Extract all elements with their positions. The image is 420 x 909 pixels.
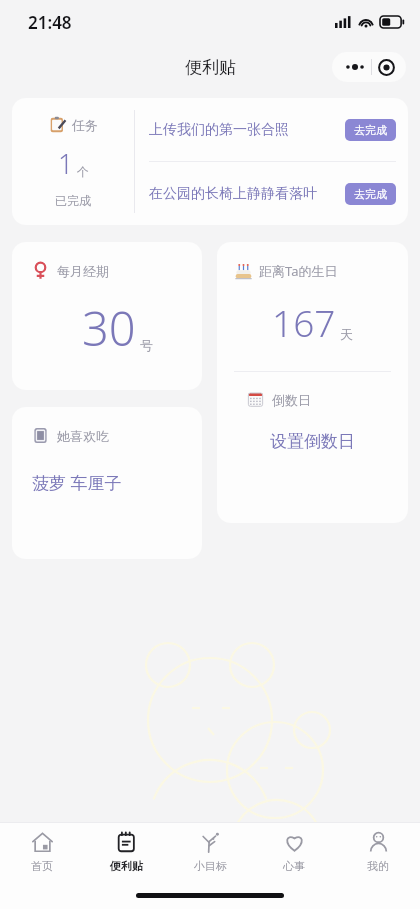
- button[interactable]: 上传我们的第一张合照: [149, 98, 396, 161]
- button[interactable]: 小目标: [168, 823, 252, 881]
- staticText: 她喜欢吃: [57, 428, 109, 444]
- staticText: 1: [58, 145, 74, 182]
- staticText: 个: [77, 164, 89, 179]
- staticText: 已完成: [55, 193, 91, 208]
- staticText: 去完成: [354, 123, 387, 137]
- staticText: 倒数日: [272, 392, 311, 408]
- button[interactable]: 去完成: [345, 119, 396, 141]
- button[interactable]: 倒数日: [217, 391, 408, 452]
- staticText: 菠萝 车厘子: [32, 471, 122, 494]
- staticText: 我的: [367, 859, 389, 873]
- staticText: 任务: [72, 117, 98, 133]
- button[interactable]: 距离Ta的生日: [217, 242, 408, 347]
- staticText: 号: [140, 337, 153, 353]
- staticText: 去完成: [354, 187, 387, 201]
- staticText: 设置倒数日: [270, 431, 355, 452]
- staticText: 小目标: [194, 859, 227, 873]
- button[interactable]: 每月经期: [12, 242, 202, 390]
- button[interactable]: More and home capsule: [332, 52, 406, 82]
- staticText: 每月经期: [57, 263, 109, 279]
- staticText: 30: [82, 296, 136, 360]
- button[interactable]: 任务: [12, 98, 134, 225]
- staticText: 便利贴: [110, 859, 143, 873]
- staticText: 在公园的长椅上静静看落叶: [149, 185, 345, 203]
- staticText: 167: [272, 297, 336, 347]
- button[interactable]: 去完成: [345, 183, 396, 205]
- button[interactable]: 便利贴: [84, 823, 168, 881]
- staticText: 天: [340, 326, 353, 342]
- staticText: 距离Ta的生日: [259, 262, 338, 280]
- staticText: 21:48: [28, 11, 72, 34]
- staticText: 心事: [283, 859, 305, 873]
- staticText: 上传我们的第一张合照: [149, 121, 345, 139]
- button[interactable]: 在公园的长椅上静静看落叶: [149, 162, 396, 225]
- staticText: 便利贴: [185, 57, 236, 78]
- button[interactable]: 我的: [336, 823, 420, 881]
- button[interactable]: 她喜欢吃: [12, 407, 202, 559]
- button[interactable]: 首页: [0, 823, 84, 881]
- staticText: 首页: [31, 859, 53, 873]
- button[interactable]: 心事: [252, 823, 336, 881]
